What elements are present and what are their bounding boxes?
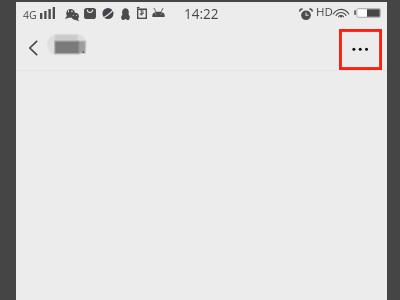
staticText: 4G: [23, 8, 37, 22]
staticText: HD: [316, 4, 333, 20]
staticText: 14:22: [184, 5, 219, 23]
button[interactable]: More options: [339, 29, 382, 70]
button[interactable]: Back: [19, 34, 48, 62]
